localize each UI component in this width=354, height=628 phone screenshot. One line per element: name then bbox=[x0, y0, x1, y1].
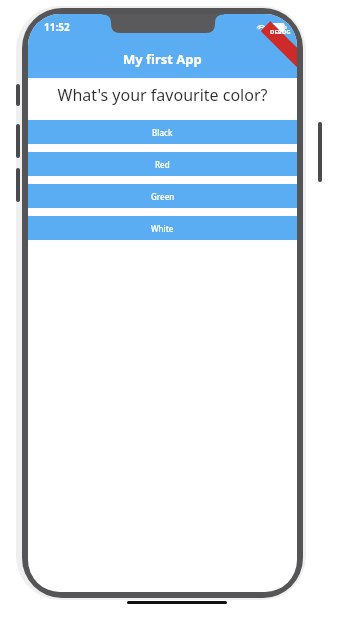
staticText: My first App bbox=[123, 50, 202, 68]
staticText: Black bbox=[152, 127, 173, 138]
button[interactable]: Red bbox=[28, 152, 297, 176]
button[interactable]: Green bbox=[28, 184, 297, 208]
staticText: Red bbox=[155, 159, 170, 170]
button[interactable]: Black bbox=[28, 120, 297, 144]
staticText: DEBUG bbox=[270, 28, 291, 36]
staticText: White bbox=[151, 223, 174, 234]
staticText: What's your favourite color? bbox=[28, 84, 297, 106]
staticText: 11:52 bbox=[44, 20, 70, 34]
staticText: Green bbox=[151, 191, 175, 202]
other: Battery bbox=[271, 23, 287, 32]
other: Wi-Fi bbox=[256, 22, 267, 33]
button[interactable]: White bbox=[28, 216, 297, 240]
